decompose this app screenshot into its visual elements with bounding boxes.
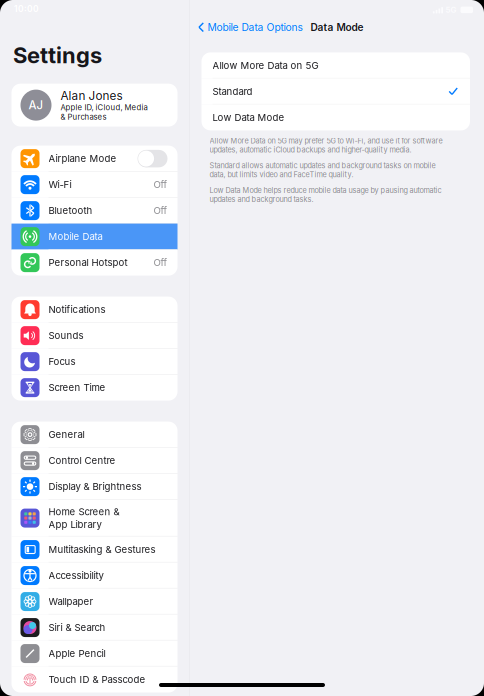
staticText: Notifications bbox=[48, 304, 105, 315]
staticText: Low Data Mode bbox=[212, 112, 284, 123]
staticText: & Purchases bbox=[60, 112, 106, 122]
staticText: AJ bbox=[28, 98, 43, 112]
button[interactable]: Wi-Fi bbox=[11, 172, 177, 198]
staticText: Off bbox=[153, 257, 167, 268]
staticText: Wi-Fi bbox=[48, 179, 71, 190]
staticText: Touch ID & Passcode bbox=[48, 674, 145, 685]
button[interactable]: Airplane Mode bbox=[11, 146, 177, 172]
staticText: Standard allows automatic updates and ba… bbox=[209, 161, 435, 179]
button[interactable]: Low Data Mode bbox=[201, 104, 470, 130]
button[interactable]: General bbox=[11, 422, 177, 448]
staticText: Accessibility bbox=[48, 570, 103, 581]
button[interactable]: Standard bbox=[201, 78, 470, 104]
staticText: Bluetooth bbox=[48, 205, 92, 216]
button[interactable]: Siri & Search bbox=[11, 614, 177, 640]
staticText: Airplane Mode bbox=[48, 153, 116, 164]
staticText: Siri & Search bbox=[48, 622, 105, 633]
staticText: Control Centre bbox=[48, 455, 115, 466]
button[interactable]: Wallpaper bbox=[11, 588, 177, 614]
button[interactable]: Allow More Data on 5G bbox=[201, 52, 470, 78]
staticText: Off bbox=[153, 205, 167, 216]
staticText: Alan Jones bbox=[60, 89, 122, 103]
button[interactable]: Display & Brightness bbox=[11, 474, 177, 500]
button[interactable]: Home Screen & bbox=[11, 500, 177, 536]
staticText: Off bbox=[153, 179, 167, 190]
button[interactable]: Accessibility bbox=[11, 562, 177, 588]
staticText: Allow More Data on 5G may prefer 5G to W… bbox=[209, 136, 442, 154]
staticText: App Library bbox=[48, 519, 101, 530]
staticText: Multitasking & Gestures bbox=[48, 544, 155, 555]
staticText: Low Data Mode helps reduce mobile data u… bbox=[209, 186, 441, 204]
staticText: Focus bbox=[48, 356, 75, 367]
button[interactable]: Apple Pencil bbox=[11, 640, 177, 666]
staticText: Wallpaper bbox=[48, 596, 93, 607]
staticText: 10:00 bbox=[14, 4, 39, 14]
staticText: Apple Pencil bbox=[48, 648, 105, 659]
staticText: Allow More Data on 5G bbox=[212, 60, 318, 71]
button[interactable]: Mobile Data Options bbox=[197, 21, 302, 33]
staticText: Home Screen & bbox=[48, 506, 119, 518]
staticText: Data Mode bbox=[310, 21, 363, 33]
staticText: Apple ID, iCloud, Media bbox=[60, 103, 147, 112]
button[interactable]: Touch ID & Passcode bbox=[11, 666, 177, 692]
button[interactable]: AJ bbox=[11, 84, 177, 127]
button[interactable]: Control Centre bbox=[11, 448, 177, 474]
button[interactable]: Mobile Data bbox=[11, 224, 177, 250]
staticText: Sounds bbox=[48, 330, 83, 341]
button[interactable]: Multitasking & Gestures bbox=[11, 536, 177, 562]
button[interactable]: Screen Time bbox=[11, 375, 177, 401]
staticText: Screen Time bbox=[48, 382, 105, 393]
staticText: 5G bbox=[445, 5, 456, 15]
button[interactable]: Sounds bbox=[11, 323, 177, 349]
staticText: Settings bbox=[13, 42, 102, 69]
staticText: General bbox=[48, 429, 84, 440]
button[interactable]: Notifications bbox=[11, 297, 177, 323]
button[interactable]: Focus bbox=[11, 349, 177, 375]
staticText: Personal Hotspot bbox=[48, 257, 127, 268]
staticText: Mobile Data Options bbox=[207, 21, 302, 33]
staticText: Mobile Data bbox=[48, 231, 102, 242]
staticText: Standard bbox=[212, 86, 252, 97]
button[interactable]: Personal Hotspot bbox=[11, 250, 177, 276]
button[interactable]: Bluetooth bbox=[11, 198, 177, 224]
staticText: Display & Brightness bbox=[48, 481, 141, 492]
